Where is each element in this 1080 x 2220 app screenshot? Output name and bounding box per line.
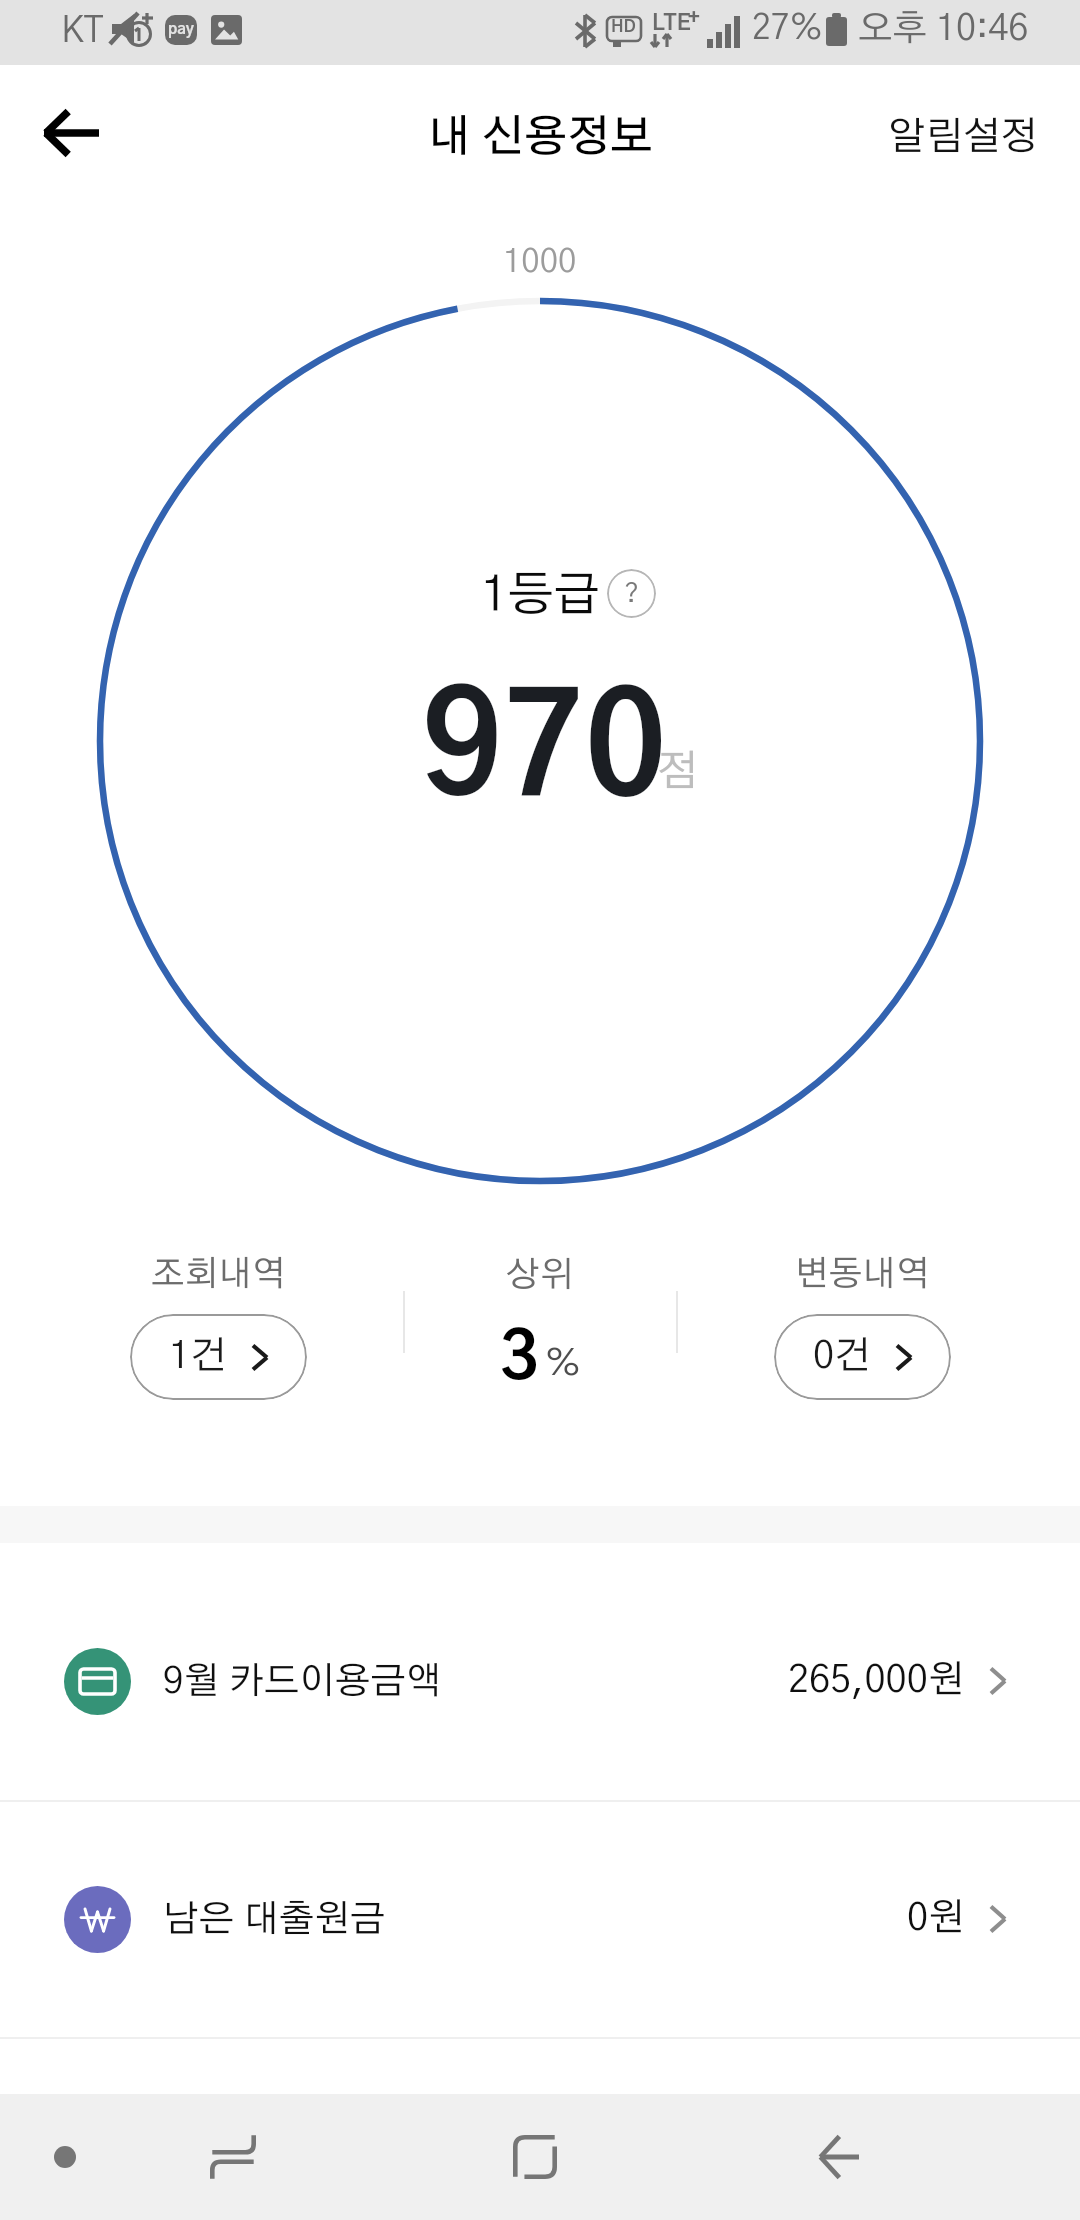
staticText: 오후 10:46 — [858, 11, 1029, 47]
button[interactable]: 알림설정 — [860, 89, 1080, 176]
button[interactable]: Home — [470, 2094, 600, 2220]
staticText: 1000 — [503, 246, 577, 279]
staticText: 상위 — [506, 1258, 574, 1293]
staticText: 970 — [422, 683, 667, 822]
staticText: 1건 — [169, 1338, 227, 1376]
button[interactable]: Recent apps — [168, 2094, 298, 2220]
staticText: 조회내역 — [151, 1257, 286, 1292]
staticText: + — [688, 8, 700, 28]
staticText: 변동내역 — [795, 1257, 930, 1292]
staticText: 9월 카드이용금액 — [163, 1663, 442, 1700]
staticText: 1등급 — [481, 572, 600, 620]
button[interactable]: 0건 — [774, 1314, 951, 1400]
staticText: 3 — [500, 1326, 539, 1392]
staticText: KT — [61, 13, 104, 49]
staticText: HD — [611, 18, 636, 35]
staticText: 남은 대출원금 — [163, 1901, 386, 1938]
staticText: 점 — [657, 751, 699, 794]
staticText: % — [545, 1345, 581, 1382]
button[interactable]: 9월 카드이용금액 — [0, 1557, 1080, 1805]
staticText: LTE — [652, 12, 691, 34]
staticText: 0건 — [813, 1338, 871, 1376]
staticText: 265,000원 — [788, 1662, 965, 1700]
staticText: pay — [168, 22, 195, 37]
staticText: 내 신용정보 — [428, 116, 653, 160]
button[interactable]: 1건 — [130, 1314, 307, 1400]
button[interactable]: About credit grade — [607, 569, 656, 618]
staticText: 0원 — [907, 1900, 965, 1938]
button[interactable]: Back — [16, 78, 126, 188]
staticText: ? — [624, 580, 639, 607]
button[interactable]: Show menu — [0, 2094, 130, 2220]
staticText: 알림설정 — [888, 118, 1038, 157]
staticText: 27% — [752, 12, 823, 46]
button[interactable]: 남은 대출원금 — [0, 1800, 1080, 2038]
button[interactable]: Back — [773, 2094, 903, 2220]
